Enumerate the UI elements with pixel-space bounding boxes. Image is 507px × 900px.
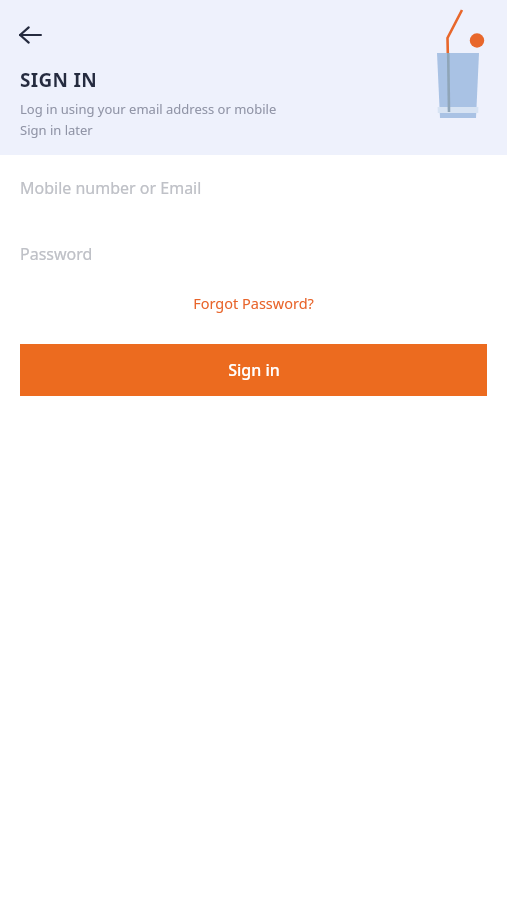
staticText: Sign in [228, 359, 280, 381]
staticText: SIGN IN [20, 67, 97, 93]
staticText: Log in using your email address or mobil… [20, 100, 277, 118]
staticText: Mobile number or Email [20, 177, 202, 199]
staticText: Sign in later [20, 121, 93, 139]
staticText: Password [20, 243, 93, 265]
button[interactable]: Password [0, 221, 507, 287]
button[interactable]: Mobile number or Email [0, 155, 507, 221]
button[interactable]: Back [10, 15, 50, 55]
staticText: Forgot Password? [193, 293, 314, 313]
button[interactable]: Forgot Password? [185, 287, 322, 319]
button[interactable]: Sign in [20, 344, 487, 396]
button[interactable]: Sign in later [20, 121, 93, 139]
